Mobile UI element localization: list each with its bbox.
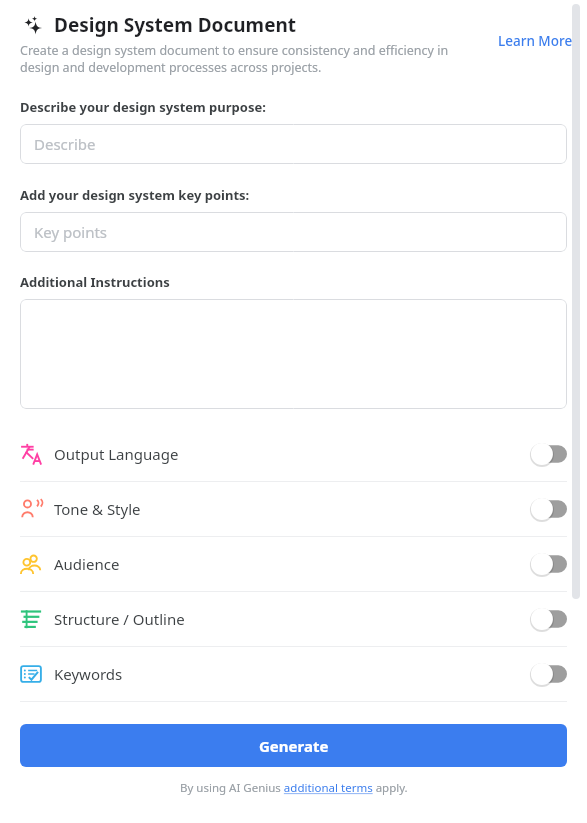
button[interactable]: Output Language [20,427,567,481]
button[interactable]: By using AI Genius additional terms appl… [180,780,408,796]
button[interactable] [20,299,567,409]
staticText: Describe your design system purpose: [20,98,266,116]
staticText: Create a design system document to ensur… [20,42,490,76]
button[interactable]: Key points [20,212,567,252]
button[interactable]: Learn More [498,32,573,50]
staticText: Audience [54,554,120,574]
staticText: Output Language [54,444,179,464]
staticText: Key points [34,222,108,242]
button[interactable]: Audience [20,537,567,591]
staticText: Generate [259,736,329,756]
button[interactable]: Structure / Outline [20,592,567,646]
button[interactable]: Keywords [20,647,567,701]
staticText: Add your design system key points: [20,186,250,204]
staticText: Design System Document [54,12,297,38]
button[interactable]: Generate [20,724,567,767]
button[interactable]: Describe [20,124,567,164]
staticText: Keywords [54,664,123,684]
staticText: Structure / Outline [54,609,185,629]
staticText: Describe [34,134,96,154]
staticText: Additional Instructions [20,273,170,291]
staticText: Learn More [498,32,573,50]
button[interactable]: Tone & Style [20,482,567,536]
staticText: Tone & Style [54,499,141,519]
